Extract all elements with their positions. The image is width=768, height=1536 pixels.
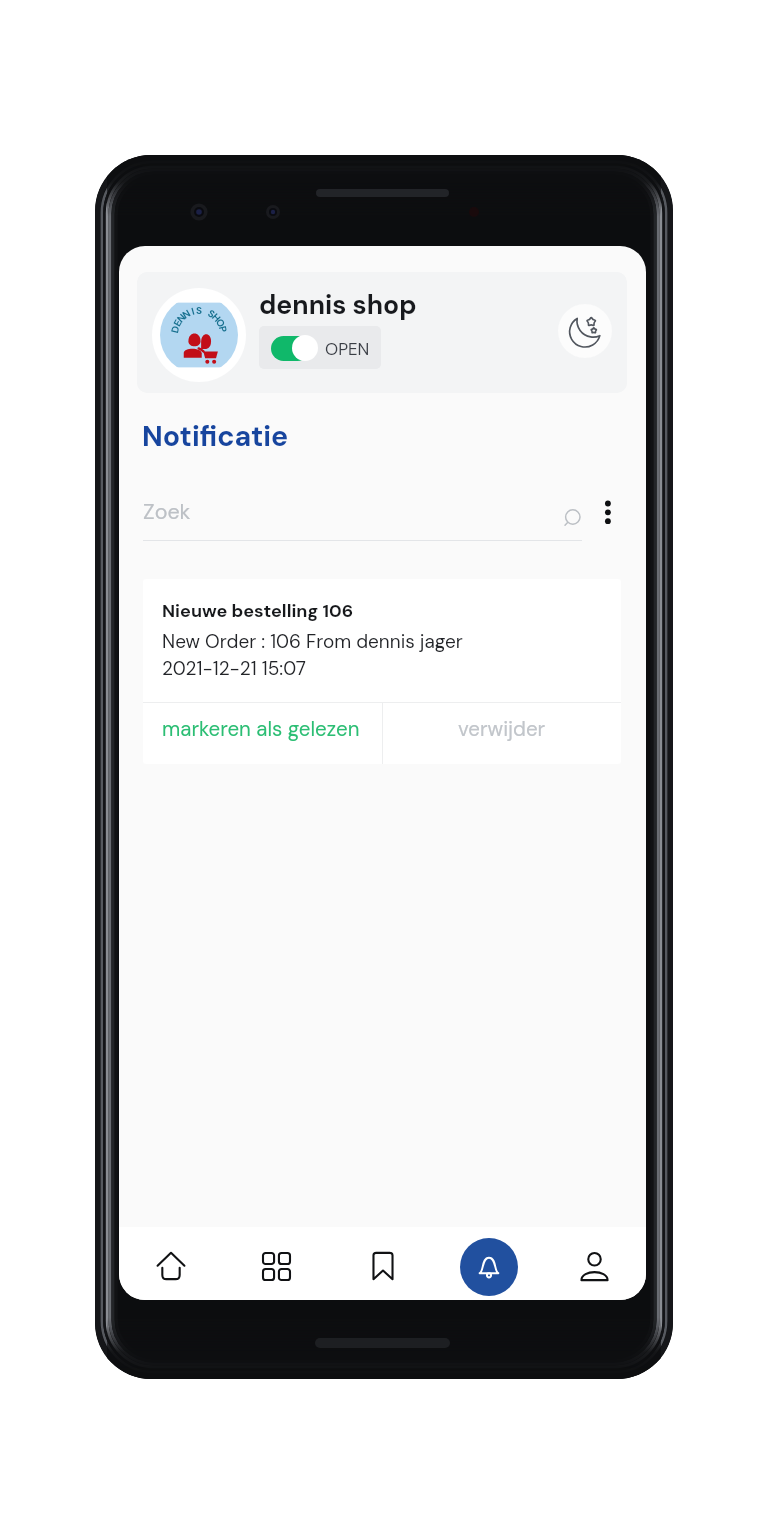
button[interactable]: Categories: [252, 1242, 300, 1290]
staticText: OPEN: [325, 338, 370, 360]
button[interactable]: Night mode: [558, 304, 612, 358]
staticText: verwijder: [458, 716, 546, 743]
staticText: markeren als gelezen: [162, 716, 360, 743]
staticText: Zoek: [143, 498, 191, 526]
staticText: O: [213, 316, 228, 330]
button[interactable]: verwijder: [383, 703, 621, 764]
staticText: I: [190, 305, 196, 318]
staticText: Nieuwe bestelling 106: [162, 599, 354, 622]
button[interactable]: More options: [594, 494, 622, 522]
staticText: H: [209, 310, 224, 325]
staticText: Notificatie: [142, 418, 289, 455]
staticText: N: [174, 310, 189, 325]
button[interactable]: markeren als gelezen: [143, 703, 382, 764]
button[interactable]: Search: [557, 501, 589, 533]
staticText: S: [196, 304, 203, 317]
staticText: [203, 305, 209, 318]
button[interactable]: Bookmarks: [359, 1242, 407, 1290]
button[interactable]: Zoek: [143, 492, 553, 542]
staticText: E: [170, 317, 185, 329]
staticText: P: [216, 325, 230, 334]
staticText: New Order : 106 From dennis jager: [162, 629, 463, 654]
staticText: S: [205, 307, 218, 321]
button[interactable]: Home: [147, 1242, 195, 1290]
button[interactable]: Profile: [570, 1242, 618, 1290]
button[interactable]: Shop open toggle: OPEN: [259, 326, 381, 369]
staticText: dennis shop: [259, 288, 417, 323]
staticText: 2021-12-21 15:07: [162, 656, 307, 681]
staticText: D: [168, 324, 182, 334]
button[interactable]: Notifications: [460, 1238, 518, 1296]
staticText: N: [180, 306, 193, 321]
